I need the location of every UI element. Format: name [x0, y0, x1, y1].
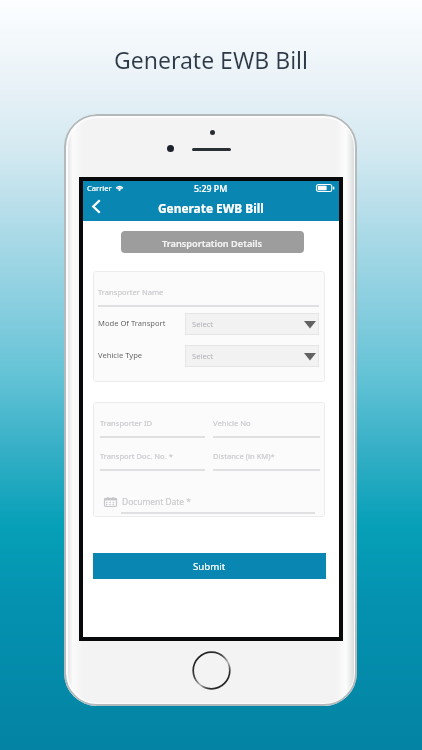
staticText: Transporter Name [98, 287, 164, 297]
button[interactable]: Select [185, 313, 319, 335]
staticText: Mode Of Transport [98, 318, 166, 328]
button[interactable]: Transportation Details [121, 231, 304, 253]
staticText: 5:29 PM [194, 183, 228, 195]
staticText: Vehicle Type [98, 350, 143, 360]
staticText: Vehicle No [213, 418, 251, 428]
staticText: Select [192, 351, 214, 361]
staticText: Transportation Details [162, 237, 263, 250]
staticText: Distance (in KM)* [213, 451, 275, 461]
staticText: Document Date * [122, 496, 191, 507]
staticText: Generate EWB Bill [158, 200, 264, 216]
button[interactable]: Submit [93, 553, 326, 579]
staticText: Select [192, 319, 214, 329]
staticText: Transporter ID [100, 418, 153, 428]
button[interactable]: Select [185, 345, 319, 367]
staticText: Transport Doc. No. * [100, 451, 173, 461]
staticText: Carrier [87, 183, 112, 193]
button[interactable]: Back [84, 195, 107, 219]
staticText: Submit [193, 560, 226, 573]
staticText: Generate EWB Bill [114, 44, 308, 75]
